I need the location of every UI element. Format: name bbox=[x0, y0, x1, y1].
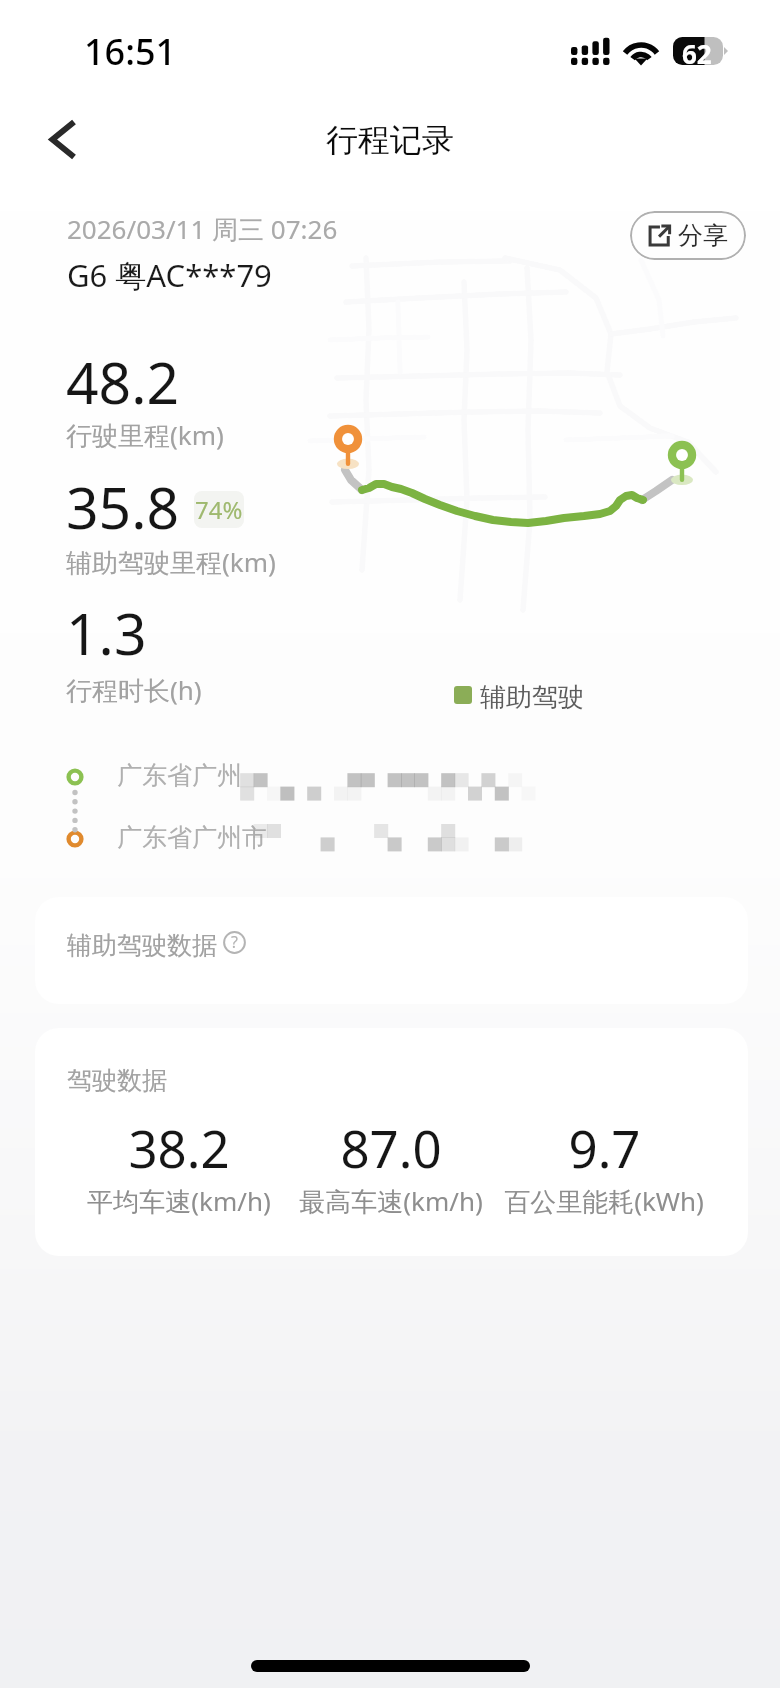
staticText: G6 粤AC***79 bbox=[67, 254, 272, 296]
button[interactable]: Back bbox=[28, 105, 96, 173]
staticText: 87.0 bbox=[340, 1113, 442, 1182]
staticText: 分享 bbox=[678, 220, 728, 251]
staticText: 1.3 bbox=[66, 594, 147, 672]
staticText: 驾驶数据 bbox=[67, 1065, 167, 1096]
staticText: 2026/03/11 周三 07:26 bbox=[67, 211, 338, 247]
staticText: 9.7 bbox=[568, 1113, 641, 1182]
staticText: 平均车速(km/h) bbox=[87, 1183, 271, 1219]
staticText: 35.8 bbox=[66, 468, 180, 546]
staticText: 辅助驾驶数据 bbox=[67, 930, 217, 961]
button[interactable]: 分享 bbox=[630, 211, 746, 260]
staticText: 辅助驾驶 bbox=[480, 681, 584, 714]
staticText: 74% bbox=[195, 493, 243, 526]
staticText: ? bbox=[231, 931, 238, 953]
button[interactable]: 驾驶数据 bbox=[35, 1028, 748, 1256]
button[interactable]: 辅助驾驶数据 bbox=[35, 897, 748, 1004]
staticText: 广东省广州 bbox=[117, 760, 242, 791]
staticText: 62 bbox=[682, 36, 712, 64]
staticText: 16:51 bbox=[84, 27, 177, 76]
staticText: 广东省广州市 bbox=[117, 822, 267, 853]
button[interactable]: 广东省广州 bbox=[117, 758, 637, 796]
staticText: 百公里能耗(kWh) bbox=[504, 1183, 704, 1219]
staticText: 辅助驾驶里程(km) bbox=[66, 544, 276, 580]
staticText: 行程记录 bbox=[326, 120, 454, 160]
staticText: 48.2 bbox=[66, 343, 180, 421]
staticText: 38.2 bbox=[128, 1113, 230, 1182]
staticText: 行驶里程(km) bbox=[66, 417, 224, 453]
button[interactable]: 广东省广州市 bbox=[117, 820, 637, 858]
button[interactable]: Help about assisted driving data bbox=[223, 931, 246, 954]
staticText: 行程时长(h) bbox=[66, 672, 202, 708]
staticText: 最高车速(km/h) bbox=[299, 1183, 483, 1219]
